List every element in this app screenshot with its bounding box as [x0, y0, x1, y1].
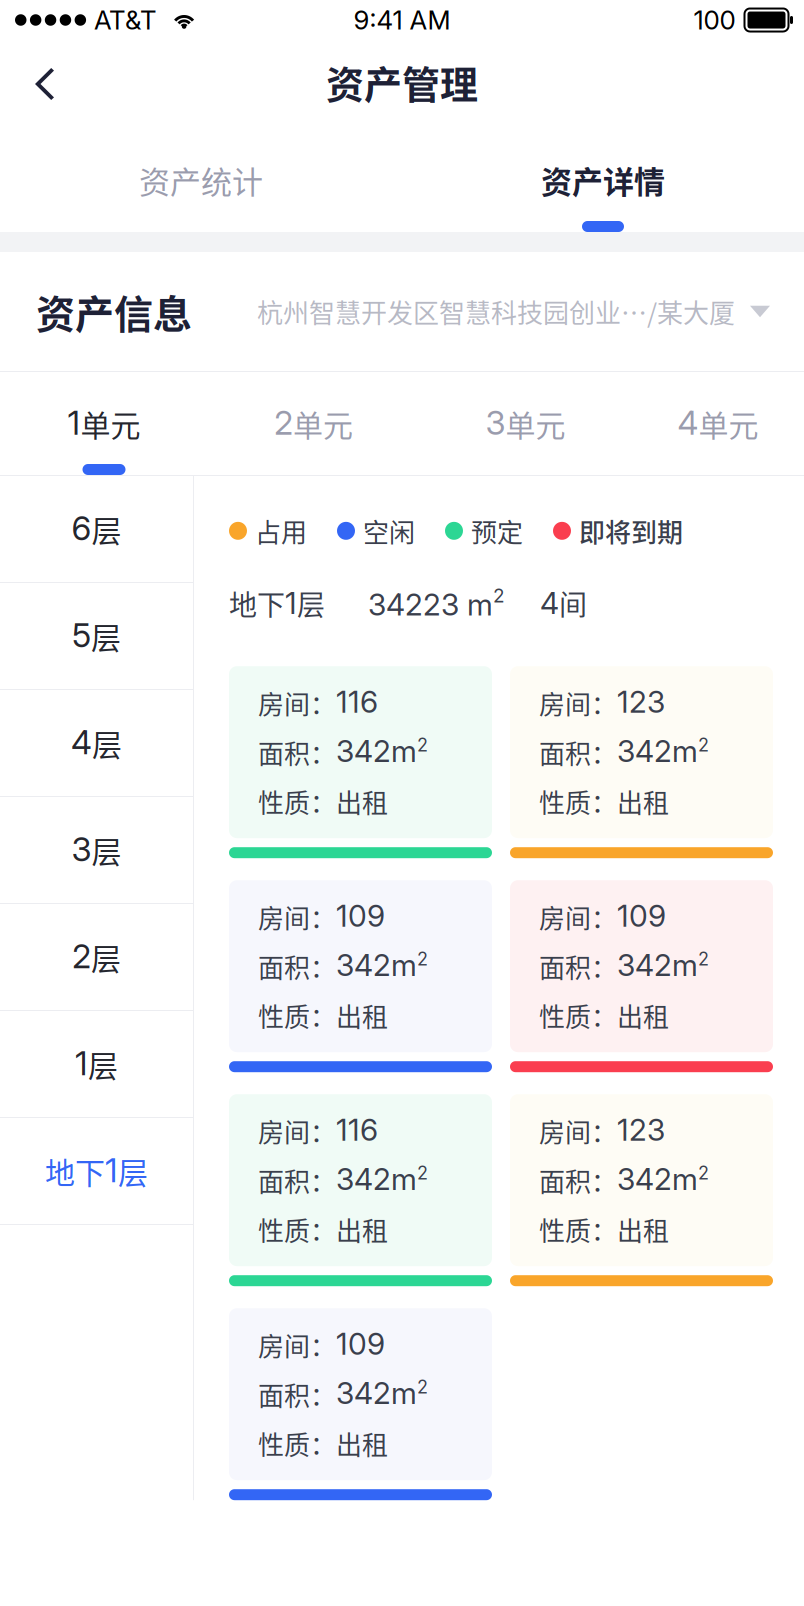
button[interactable]: 房间：123 [510, 1094, 773, 1286]
staticText: 2层 [72, 936, 121, 978]
staticText: 杭州智慧开发区智慧科技园创业…/某大厦 [257, 293, 735, 330]
staticText: 面积：342m2 [258, 1161, 428, 1199]
staticText: 性质：出租 [539, 783, 669, 820]
staticText: 房间：116 [258, 684, 378, 721]
button[interactable]: 5层 [0, 583, 193, 690]
staticText: 4间 [540, 584, 587, 623]
button[interactable]: 2单元 [208, 372, 419, 475]
button[interactable]: 房间：109 [510, 880, 773, 1072]
staticText: 2单元 [274, 402, 353, 445]
button[interactable]: 2层 [0, 904, 193, 1011]
staticText: 资产信息 [36, 283, 192, 340]
staticText: 资产详情 [541, 158, 665, 202]
button[interactable]: 资产统计 [0, 128, 402, 232]
staticText: 房间：109 [258, 898, 385, 935]
button[interactable]: 1层 [0, 1011, 193, 1118]
staticText: 面积：342m2 [258, 1375, 428, 1413]
staticText: 性质：出租 [539, 1211, 669, 1248]
staticText: 性质：出租 [258, 997, 388, 1034]
staticText: 性质：出租 [258, 783, 388, 820]
staticText: 性质：出租 [258, 1211, 388, 1248]
button[interactable]: 3层 [0, 797, 193, 904]
staticText: 面积：342m2 [258, 947, 428, 985]
staticText: 性质：出租 [539, 997, 669, 1034]
staticText: 6层 [71, 508, 121, 550]
staticText: 1单元 [67, 402, 140, 445]
button[interactable]: 房间：123 [510, 666, 773, 858]
staticText: 资产统计 [139, 158, 263, 202]
button[interactable]: 6层 [0, 476, 193, 583]
staticText: 房间：109 [539, 898, 666, 935]
staticText: 1层 [75, 1043, 118, 1085]
button[interactable]: 返回 [0, 40, 80, 128]
staticText: 性质：出租 [258, 1425, 388, 1462]
staticText: 面积：342m2 [258, 733, 428, 771]
staticText: 9:41 AM [353, 4, 450, 36]
button[interactable]: 4单元 [632, 372, 804, 475]
staticText: 面积：342m2 [539, 947, 709, 985]
button[interactable]: 房间：109 [229, 880, 492, 1072]
staticText: 100 [693, 4, 735, 36]
button[interactable]: 地下1层 [0, 1118, 193, 1225]
button[interactable]: 房间：116 [229, 1094, 492, 1286]
staticText: 空闲 [363, 512, 415, 550]
staticText: 34223 m2 [368, 584, 505, 622]
staticText: 4单元 [677, 402, 758, 445]
staticText: AT&T [94, 4, 157, 36]
button[interactable]: 3单元 [419, 372, 632, 475]
staticText: 5层 [72, 615, 121, 657]
staticText: 地下1层 [45, 1150, 148, 1192]
staticText: 即将到期 [579, 512, 683, 550]
staticText: 预定 [471, 512, 523, 550]
staticText: 占用 [255, 512, 307, 550]
staticText: 4层 [71, 722, 122, 764]
button[interactable]: 资产信息 [0, 252, 804, 371]
staticText: 房间：116 [258, 1112, 378, 1149]
staticText: 面积：342m2 [539, 1161, 709, 1199]
staticText: 房间：123 [539, 1112, 665, 1149]
button[interactable]: 资产详情 [402, 128, 804, 232]
button[interactable]: 4层 [0, 690, 193, 797]
staticText: 地下1层 [229, 584, 325, 623]
staticText: 3单元 [485, 402, 565, 445]
staticText: 房间：123 [539, 684, 665, 721]
button[interactable]: 房间：116 [229, 666, 492, 858]
button[interactable]: 房间：109 [229, 1308, 492, 1500]
button[interactable]: 1单元 [0, 372, 208, 475]
staticText: 房间：109 [258, 1326, 385, 1363]
staticText: 3层 [71, 829, 121, 871]
staticText: 资产管理 [326, 54, 478, 109]
staticText: 面积：342m2 [539, 733, 709, 771]
